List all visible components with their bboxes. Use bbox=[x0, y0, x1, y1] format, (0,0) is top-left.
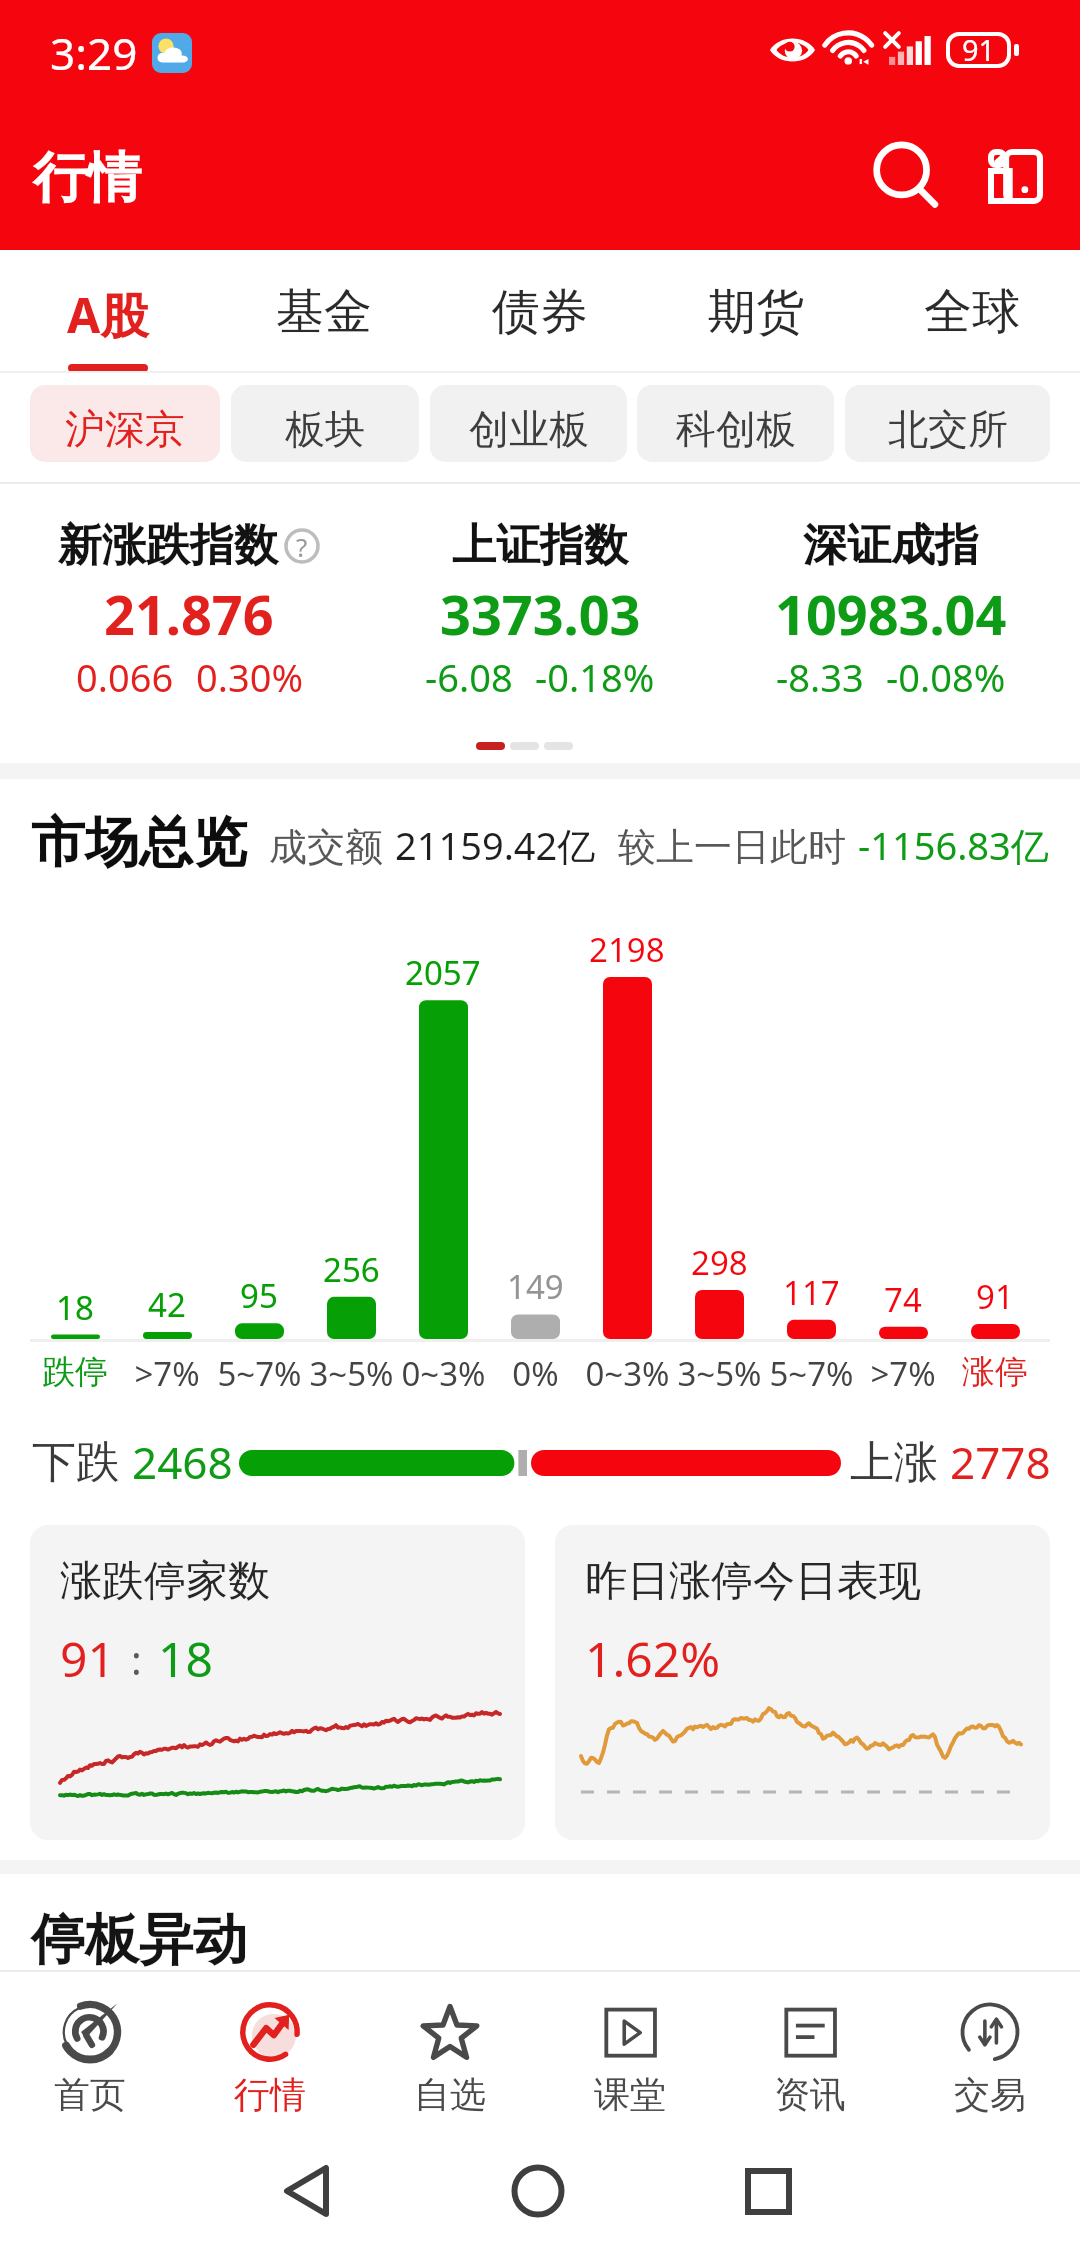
staticText: 全球 bbox=[924, 282, 1020, 342]
staticText: -0.08% bbox=[886, 651, 1006, 703]
staticText: 上证指数 bbox=[452, 518, 628, 573]
staticText: : bbox=[131, 1632, 142, 1686]
staticText: 成交额 bbox=[269, 823, 383, 871]
staticText: 256 bbox=[323, 1247, 380, 1292]
staticText: 21.876 bbox=[104, 577, 274, 651]
button[interactable]: Layout bbox=[969, 130, 1061, 222]
button[interactable]: 课堂 bbox=[540, 1972, 720, 2120]
staticText: 74 bbox=[884, 1277, 922, 1322]
staticText: 2778 bbox=[950, 1432, 1051, 1492]
staticText: 期货 bbox=[708, 282, 804, 342]
staticText: 新涨跌指数 bbox=[58, 518, 278, 573]
button[interactable]: 债券 bbox=[432, 250, 648, 372]
staticText: 板块 bbox=[285, 404, 365, 454]
staticText: -8.33 bbox=[776, 651, 864, 703]
button[interactable]: Search bbox=[862, 129, 954, 221]
button[interactable]: 科创板 bbox=[637, 385, 834, 462]
button[interactable]: 上证指数 bbox=[378, 484, 702, 703]
staticText: 18 bbox=[158, 1626, 213, 1691]
staticText: >7% bbox=[134, 1351, 200, 1396]
staticText: 跌停 bbox=[42, 1351, 108, 1393]
button[interactable]: Recents bbox=[708, 2131, 828, 2244]
button[interactable]: 全球 bbox=[864, 250, 1080, 372]
button[interactable]: 交易 bbox=[900, 1972, 1080, 2120]
staticText: 首页 bbox=[54, 2072, 126, 2117]
staticText: 创业板 bbox=[469, 404, 589, 454]
staticText: 3:29 bbox=[50, 23, 138, 83]
staticText: 117 bbox=[783, 1270, 840, 1315]
staticText: 科创板 bbox=[676, 404, 796, 454]
staticText: -0.18% bbox=[535, 651, 655, 703]
staticText: 3373.03 bbox=[440, 577, 641, 651]
staticText: 较上一日此时 bbox=[618, 823, 846, 871]
staticText: 0~3% bbox=[585, 1351, 670, 1396]
staticText: 91 bbox=[976, 1274, 1014, 1319]
staticText: 自选 bbox=[414, 2072, 486, 2117]
staticText: 21159.42亿 bbox=[395, 819, 596, 871]
button[interactable]: 基金 bbox=[216, 250, 432, 372]
staticText: 298 bbox=[691, 1240, 748, 1285]
button[interactable]: A股 bbox=[0, 250, 216, 372]
staticText: 课堂 bbox=[594, 2072, 666, 2117]
staticText: 涨停 bbox=[962, 1351, 1028, 1393]
staticText: 91 bbox=[962, 30, 996, 66]
staticText: 债券 bbox=[492, 282, 588, 342]
staticText: 149 bbox=[507, 1264, 564, 1309]
button[interactable]: 板块 bbox=[231, 385, 419, 462]
staticText: 资讯 bbox=[774, 2072, 846, 2117]
button[interactable]: 首页 bbox=[0, 1972, 180, 2120]
staticText: 18 bbox=[56, 1285, 94, 1330]
staticText: 市场总览 bbox=[31, 809, 247, 877]
staticText: 基金 bbox=[276, 282, 372, 342]
button[interactable]: 期货 bbox=[648, 250, 864, 372]
button[interactable]: 自选 bbox=[360, 1972, 540, 2120]
staticText: 95 bbox=[240, 1273, 278, 1318]
staticText: 5~7% bbox=[769, 1351, 854, 1396]
button[interactable]: 深证成指 bbox=[702, 484, 1080, 703]
staticText: 2057 bbox=[405, 950, 481, 995]
button[interactable]: 涨跌停家数 bbox=[30, 1525, 525, 1840]
button[interactable]: Back bbox=[248, 2131, 368, 2244]
staticText: 42 bbox=[148, 1282, 186, 1327]
staticText: -6.08 bbox=[425, 651, 513, 703]
staticText: 停板异动 bbox=[31, 1906, 247, 1974]
button[interactable]: 沪深京 bbox=[30, 385, 220, 462]
staticText: 0~3% bbox=[401, 1351, 486, 1396]
staticText: 涨跌停家数 bbox=[60, 1555, 270, 1608]
staticText: 昨日涨停今日表现 bbox=[585, 1555, 921, 1608]
staticText: 1.62% bbox=[585, 1626, 721, 1691]
staticText: 下跌 bbox=[32, 1435, 120, 1490]
staticText: 交易 bbox=[954, 2072, 1026, 2117]
button[interactable]: 新涨跌指数 bbox=[0, 484, 378, 703]
button[interactable]: 北交所 bbox=[845, 385, 1050, 462]
staticText: A股 bbox=[67, 282, 149, 348]
button[interactable]: Home bbox=[478, 2131, 598, 2244]
staticText: 沪深京 bbox=[65, 404, 185, 454]
staticText: ? bbox=[296, 529, 308, 564]
staticText: -1156.83亿 bbox=[858, 819, 1049, 871]
staticText: 5~7% bbox=[217, 1351, 302, 1396]
staticText: 行情 bbox=[234, 2072, 306, 2117]
staticText: 3~5% bbox=[309, 1351, 394, 1396]
button[interactable]: 行情 bbox=[180, 1972, 360, 2120]
staticText: 北交所 bbox=[888, 404, 1008, 454]
staticText: 2468 bbox=[132, 1432, 233, 1492]
staticText: 深证成指 bbox=[803, 518, 979, 573]
staticText: 3~5% bbox=[677, 1351, 762, 1396]
staticText: 10983.04 bbox=[775, 577, 1007, 651]
staticText: 0.30% bbox=[196, 651, 303, 703]
staticText: >7% bbox=[870, 1351, 936, 1396]
staticText: 2198 bbox=[589, 927, 665, 972]
staticText: 91 bbox=[60, 1626, 115, 1691]
button[interactable]: 资讯 bbox=[720, 1972, 900, 2120]
staticText: 上涨 bbox=[850, 1435, 938, 1490]
button[interactable]: 昨日涨停今日表现 bbox=[555, 1525, 1050, 1840]
staticText: 行情 bbox=[33, 144, 141, 212]
staticText: 0.066 bbox=[76, 651, 174, 703]
staticText: 0% bbox=[512, 1351, 559, 1396]
button[interactable]: 创业板 bbox=[430, 385, 627, 462]
